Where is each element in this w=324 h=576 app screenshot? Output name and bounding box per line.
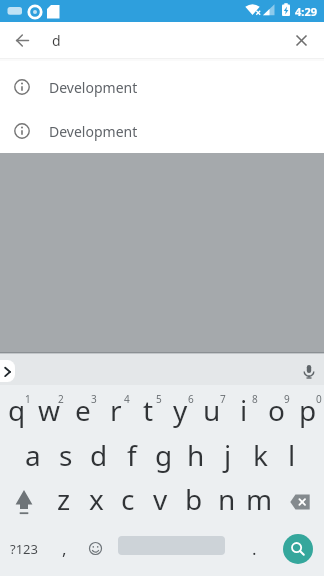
button[interactable]: t [132, 385, 164, 433]
staticText: x [89, 480, 104, 518]
staticText: k [253, 436, 268, 474]
staticText: h [187, 436, 205, 474]
button[interactable]: l [276, 433, 308, 477]
button[interactable]: . [239, 521, 269, 576]
button[interactable]: f [115, 433, 148, 477]
staticText: 6 [188, 392, 194, 406]
button[interactable] [276, 477, 324, 521]
staticText: q [8, 391, 26, 429]
staticText: r [110, 391, 122, 429]
button[interactable]: v [144, 477, 177, 521]
button[interactable] [302, 365, 316, 379]
button[interactable] [80, 521, 110, 576]
staticText: p [299, 391, 317, 429]
staticText: f [127, 436, 137, 474]
button[interactable]: c [112, 477, 144, 521]
staticText: 8 [252, 392, 258, 406]
button[interactable]: b [177, 477, 210, 521]
staticText: 2 [58, 392, 64, 406]
staticText: w [38, 391, 61, 429]
staticText: c [121, 480, 135, 518]
button[interactable]: p [292, 385, 324, 433]
button[interactable]: r [99, 385, 132, 433]
staticText: n [218, 480, 236, 518]
button[interactable]: u [196, 385, 228, 433]
staticText: ?123 [10, 540, 38, 558]
staticText: s [59, 436, 73, 474]
staticText: Development [49, 78, 138, 97]
button[interactable]: y [164, 385, 196, 433]
button[interactable] [0, 22, 44, 58]
staticText: 0 [316, 392, 322, 406]
staticText: 1 [25, 392, 31, 406]
staticText: i [240, 391, 248, 429]
staticText: z [57, 480, 71, 518]
staticText: e [75, 391, 91, 429]
button[interactable]: o [260, 385, 292, 433]
button[interactable]: d [82, 433, 115, 477]
staticText: v [153, 480, 168, 518]
staticText: . [252, 537, 257, 560]
staticText: g [155, 436, 173, 474]
staticText: t [143, 391, 154, 429]
staticText: a [25, 436, 41, 474]
button[interactable] [283, 534, 313, 564]
staticText: j [224, 436, 232, 474]
staticText: 7 [220, 392, 226, 406]
button[interactable]: j [212, 433, 244, 477]
button[interactable]: w [33, 385, 66, 433]
staticText: d [90, 436, 108, 474]
staticText: 3 [91, 392, 97, 406]
button[interactable]: q [0, 385, 33, 433]
button[interactable]: k [244, 433, 276, 477]
button[interactable]: m [243, 477, 276, 521]
staticText: 5 [156, 392, 162, 406]
button[interactable]: h [180, 433, 212, 477]
button[interactable] [0, 477, 48, 521]
button[interactable]: x [80, 477, 112, 521]
button[interactable]: n [210, 477, 243, 521]
staticText: 4:29 [295, 4, 317, 19]
button[interactable]: , [48, 521, 80, 576]
button[interactable] [0, 360, 15, 382]
button[interactable]: e [66, 385, 99, 433]
button[interactable] [279, 22, 324, 58]
button[interactable]: Development [0, 65, 324, 109]
button[interactable]: s [49, 433, 82, 477]
staticText: o [268, 391, 285, 429]
staticText: m [246, 480, 273, 518]
button[interactable]: i [228, 385, 260, 433]
staticText: Development [49, 122, 138, 141]
button[interactable]: Development [0, 109, 324, 153]
staticText: 4 [124, 392, 130, 406]
button[interactable]: a [16, 433, 49, 477]
staticText: b [185, 480, 203, 518]
button[interactable]: z [48, 477, 80, 521]
button[interactable]: ?123 [0, 521, 48, 576]
staticText: , [62, 537, 67, 560]
staticText: 9 [284, 392, 290, 406]
staticText: l [288, 436, 296, 474]
staticText: u [203, 391, 221, 429]
staticText: y [173, 391, 188, 429]
staticText: d [52, 31, 61, 50]
button[interactable]: g [148, 433, 180, 477]
